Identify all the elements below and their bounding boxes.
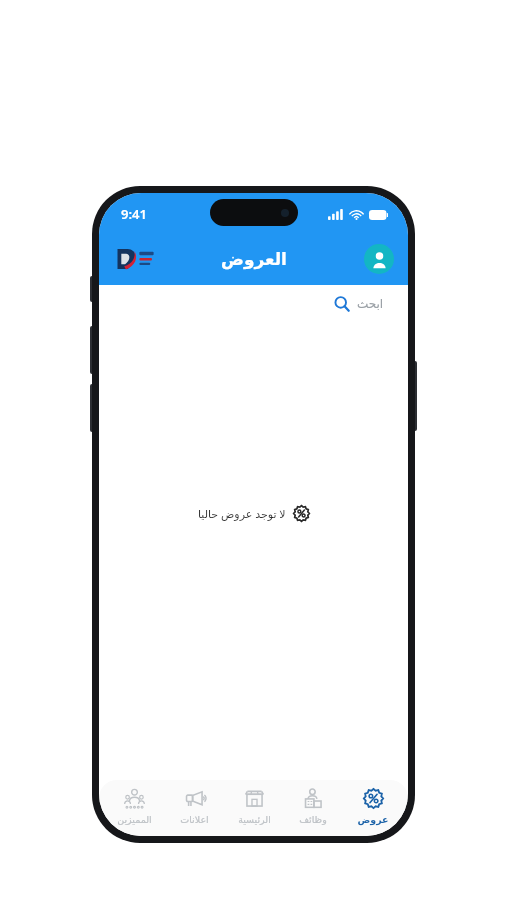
button[interactable]: وظائف (284, 786, 342, 836)
staticText: العروض (221, 249, 287, 269)
staticText: عروض (357, 814, 389, 825)
button[interactable]: Logo (115, 246, 157, 272)
staticText: وظائف (299, 814, 327, 825)
button[interactable]: الرئيسية (225, 786, 283, 836)
staticText: اعلانات (180, 814, 209, 825)
button[interactable]: عروض (344, 786, 402, 836)
button[interactable]: اعلانات (165, 786, 223, 836)
button[interactable]: ابحث (101, 285, 406, 323)
staticText: ابحث (357, 297, 384, 311)
staticText: لا توجد عروض حاليا (198, 506, 286, 521)
staticText: 9:41 (121, 205, 147, 223)
staticText: المميزين (117, 814, 152, 825)
staticText: الرئيسية (238, 814, 271, 825)
button[interactable]: Profile (364, 244, 394, 274)
button[interactable]: المميزين (105, 786, 163, 836)
